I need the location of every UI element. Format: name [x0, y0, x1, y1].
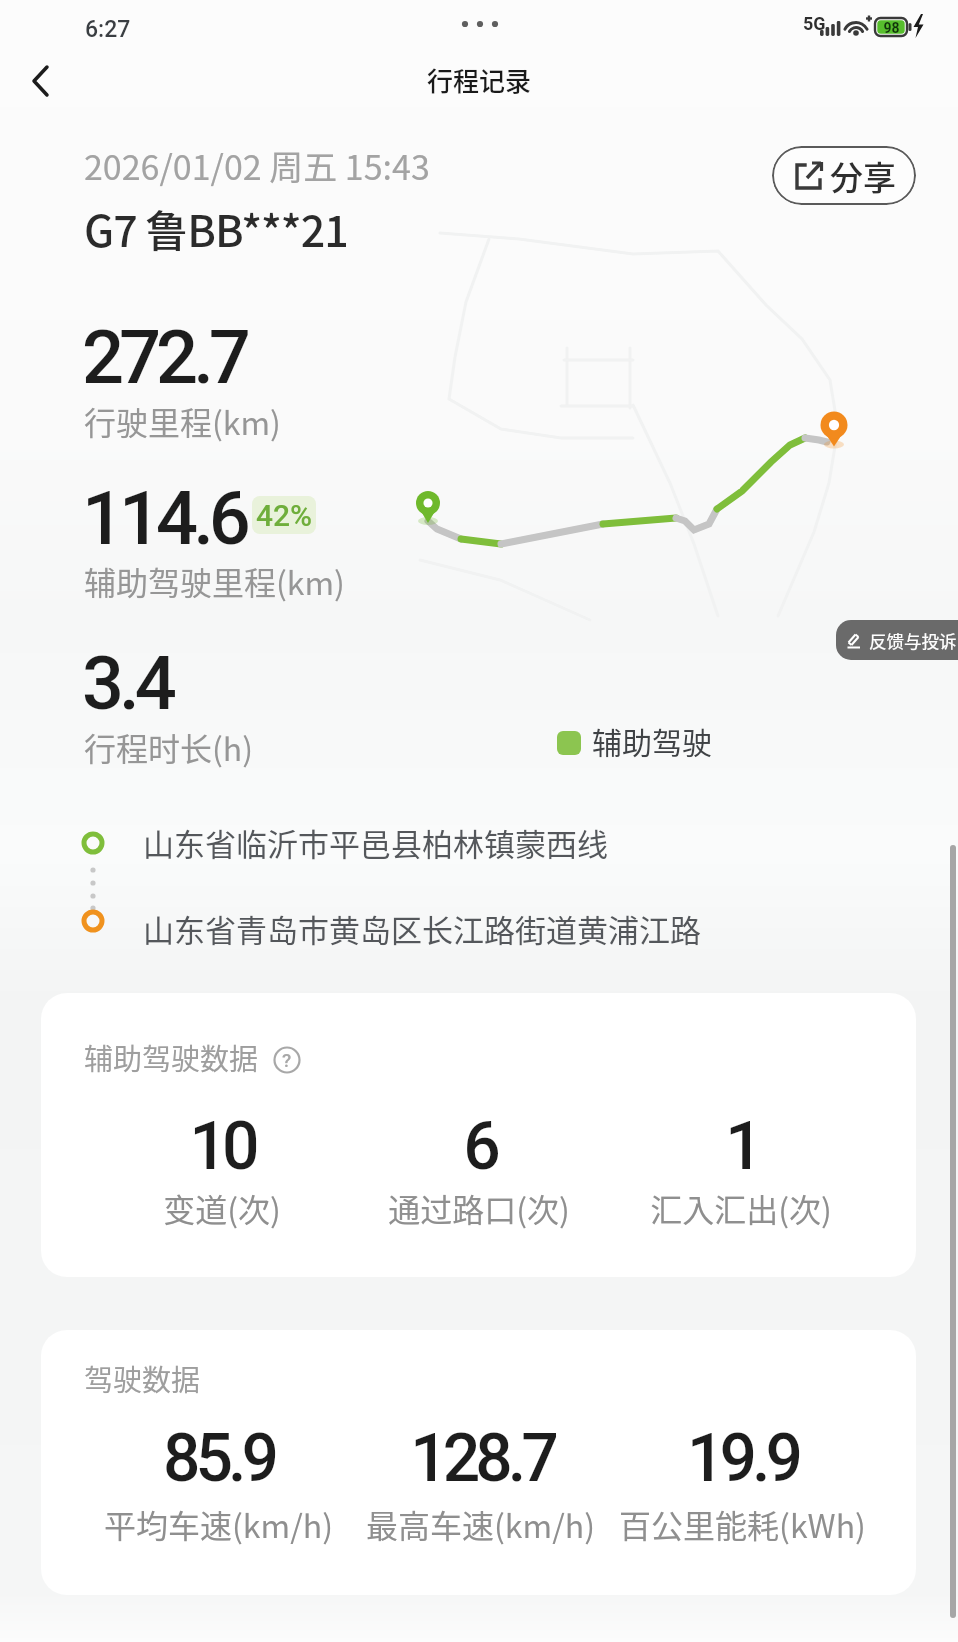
staticText: 行程时长(h): [84, 724, 254, 770]
staticText: 辅助驾驶里程(km): [84, 558, 345, 604]
staticText: 最高车速(km/h): [366, 1501, 595, 1547]
staticText: 19.9: [687, 1420, 798, 1497]
staticText: 驾驶数据: [84, 1357, 201, 1399]
staticText: 山东省临沂市平邑县柏林镇蒙西线: [143, 820, 608, 865]
staticText: 5G: [803, 13, 826, 34]
staticText: 1: [725, 1108, 758, 1185]
staticText: 百公里能耗(kWh): [619, 1501, 866, 1547]
button[interactable]: 反馈与投诉: [836, 620, 958, 660]
staticText: 98: [883, 20, 900, 36]
staticText: 变道(次): [163, 1185, 281, 1231]
staticText: 128.7: [410, 1420, 554, 1497]
staticText: 272.7: [82, 314, 246, 401]
button[interactable]: 分享: [772, 146, 916, 205]
staticText: G7 鲁BB***21: [84, 197, 348, 259]
staticText: 平均车速(km/h): [104, 1501, 333, 1547]
staticText: 行驶里程(km): [84, 398, 281, 444]
staticText: 辅助驾驶数据: [84, 1036, 259, 1078]
staticText: 42%: [256, 498, 313, 533]
staticText: 2026/01/02 周五 15:43: [84, 141, 430, 190]
staticText: 3.4: [82, 640, 172, 727]
staticText: 通过路口(次): [388, 1185, 570, 1231]
staticText: ?: [282, 1049, 292, 1071]
staticText: 6:27: [85, 16, 131, 43]
staticText: 6: [463, 1108, 496, 1185]
staticText: 辅助驾驶: [592, 719, 712, 762]
staticText: 汇入汇出(次): [650, 1185, 832, 1231]
staticText: 反馈与投诉: [869, 628, 957, 653]
button[interactable]: [20, 60, 64, 104]
staticText: 山东省青岛市黄岛区长江路街道黄浦江路: [143, 906, 701, 951]
staticText: 分享: [830, 152, 896, 200]
staticText: 114.6: [82, 475, 246, 562]
staticText: 行程记录: [427, 61, 532, 99]
staticText: 10: [189, 1108, 255, 1185]
button[interactable]: ?: [272, 1045, 302, 1075]
staticText: 85.9: [163, 1420, 274, 1497]
